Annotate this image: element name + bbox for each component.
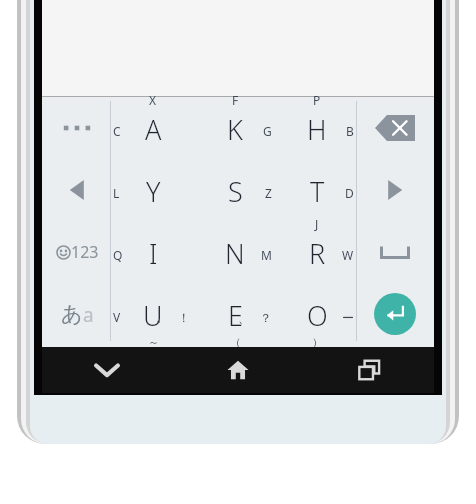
button[interactable]: N bbox=[194, 223, 276, 281]
button[interactable]: Enter bbox=[360, 285, 430, 343]
staticText: V bbox=[113, 309, 121, 325]
staticText: L bbox=[113, 185, 120, 201]
staticText: 。 bbox=[156, 310, 168, 325]
staticText: I bbox=[149, 235, 158, 272]
staticText: X bbox=[149, 92, 157, 108]
staticText: ！ bbox=[178, 310, 190, 325]
staticText: K bbox=[227, 111, 243, 148]
staticText: 、 bbox=[238, 310, 250, 325]
staticText: J bbox=[315, 216, 319, 232]
staticText: H bbox=[307, 111, 327, 148]
staticText: W bbox=[342, 247, 354, 263]
staticText: a bbox=[83, 302, 94, 328]
button[interactable]: Y bbox=[112, 161, 194, 219]
button[interactable]: Switch input language bbox=[46, 285, 108, 343]
button[interactable]: Move cursor right bbox=[360, 161, 430, 219]
button[interactable]: Hide keyboard bbox=[42, 347, 172, 393]
button[interactable]: Emoji and numbers bbox=[46, 223, 108, 281]
staticText: ？ bbox=[260, 310, 272, 325]
staticText: Y bbox=[146, 173, 161, 210]
staticText: ー bbox=[342, 310, 354, 325]
staticText: C bbox=[113, 123, 121, 139]
staticText: （ bbox=[230, 335, 241, 349]
button[interactable]: Recent apps bbox=[303, 347, 434, 393]
staticText: T bbox=[310, 173, 325, 210]
staticText: S bbox=[228, 173, 243, 210]
button[interactable]: More options bbox=[46, 99, 108, 157]
button[interactable]: A bbox=[112, 99, 194, 157]
button[interactable]: Space bbox=[360, 223, 430, 281]
staticText: あ bbox=[61, 301, 83, 327]
staticText: ） bbox=[312, 335, 323, 349]
button[interactable]: Move cursor left bbox=[46, 161, 108, 219]
button[interactable]: K bbox=[194, 99, 276, 157]
staticText: 123 bbox=[71, 241, 99, 263]
button[interactable]: T bbox=[276, 161, 358, 219]
staticText: A bbox=[145, 111, 162, 148]
button[interactable]: I bbox=[112, 223, 194, 281]
staticText: Q bbox=[113, 247, 123, 263]
button[interactable]: O bbox=[276, 285, 358, 343]
staticText: ～ bbox=[148, 335, 159, 349]
staticText: M bbox=[261, 247, 272, 263]
button[interactable]: Backspace bbox=[360, 99, 430, 157]
staticText: N bbox=[225, 235, 245, 272]
staticText: B bbox=[346, 123, 354, 139]
button[interactable]: S bbox=[194, 161, 276, 219]
button[interactable]: E bbox=[194, 285, 276, 343]
staticText: Z bbox=[265, 185, 272, 201]
staticText: U bbox=[143, 297, 163, 334]
staticText: F bbox=[232, 92, 239, 108]
staticText: D bbox=[345, 185, 354, 201]
button[interactable]: Home bbox=[172, 347, 303, 393]
button[interactable]: U bbox=[112, 285, 194, 343]
staticText: G bbox=[263, 123, 272, 139]
staticText: R bbox=[309, 235, 326, 272]
button[interactable]: H bbox=[276, 99, 358, 157]
staticText: P bbox=[313, 92, 321, 108]
button[interactable]: R bbox=[276, 223, 358, 281]
staticText: O bbox=[307, 297, 328, 334]
staticText: E bbox=[228, 297, 243, 334]
